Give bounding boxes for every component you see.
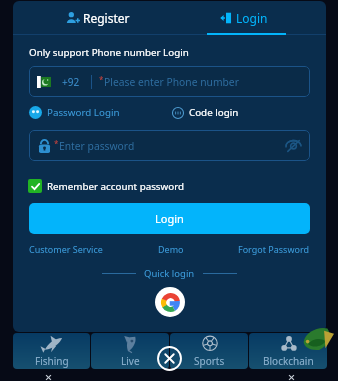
staticText: Only support Phone number Login (29, 46, 189, 59)
staticText: +92 (62, 75, 80, 89)
button[interactable]: Register (13, 1, 169, 35)
button[interactable]: * (29, 130, 310, 161)
button[interactable]: Code login (172, 106, 239, 119)
button[interactable]: Login (29, 203, 310, 234)
staticText: Please enter Phone number (104, 75, 239, 89)
staticText: Code login (189, 106, 239, 119)
button[interactable]: Sign in with Google (155, 287, 185, 317)
staticText: Sports (194, 354, 225, 368)
button[interactable]: Fishing (13, 333, 90, 369)
button[interactable]: Show password (283, 136, 303, 156)
staticText: Fishing (35, 354, 69, 368)
staticText: Live (121, 354, 140, 368)
staticText: Login (236, 10, 268, 26)
staticText: Enter password (59, 139, 135, 153)
button[interactable]: Blockchain (249, 333, 327, 369)
button[interactable]: Password Login (29, 106, 120, 119)
button[interactable]: Sports (170, 333, 248, 369)
button[interactable]: Close (157, 346, 182, 371)
staticText: Blockchain (263, 354, 314, 368)
button[interactable]: +92 (29, 66, 310, 97)
button[interactable]: Live (91, 333, 169, 369)
staticText: * (99, 74, 104, 85)
button[interactable]: Forgot Password (238, 243, 310, 255)
staticText: Password Login (47, 106, 120, 119)
staticText: Register (83, 10, 130, 26)
staticText: * (54, 138, 59, 149)
staticText: Quick login (144, 267, 195, 280)
button[interactable]: Login (169, 1, 326, 35)
staticText: Remember account password (47, 180, 185, 193)
button[interactable]: Customer Service (29, 243, 103, 255)
button[interactable]: Demo (158, 243, 184, 255)
button[interactable]: Remember account password (28, 179, 185, 193)
staticText: Login (155, 211, 184, 226)
